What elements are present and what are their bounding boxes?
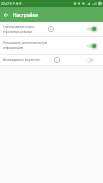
staticText: 22:47: [1, 2, 10, 6]
button[interactable]: More information: [47, 25, 55, 33]
staticText: Настройки: [13, 12, 39, 18]
button[interactable]: Enabled: [85, 40, 101, 52]
staticText: Сканирование карты в фоновом режиме: [3, 25, 37, 34]
button[interactable]: More information: [53, 56, 61, 64]
button[interactable]: Disabled: [85, 55, 101, 65]
staticText: Активировать маркетинг: [3, 58, 43, 62]
button[interactable]: Enabled: [85, 23, 101, 35]
button[interactable]: Активировать маркетинг: [0, 55, 103, 65]
button[interactable]: Сканирование карты в фоновом режиме: [0, 22, 103, 36]
button[interactable]: Navigate up: [0, 7, 11, 22]
staticText: Показывать дополнительную информацию: [3, 41, 49, 50]
button[interactable]: Показывать дополнительную информацию: [0, 37, 103, 54]
